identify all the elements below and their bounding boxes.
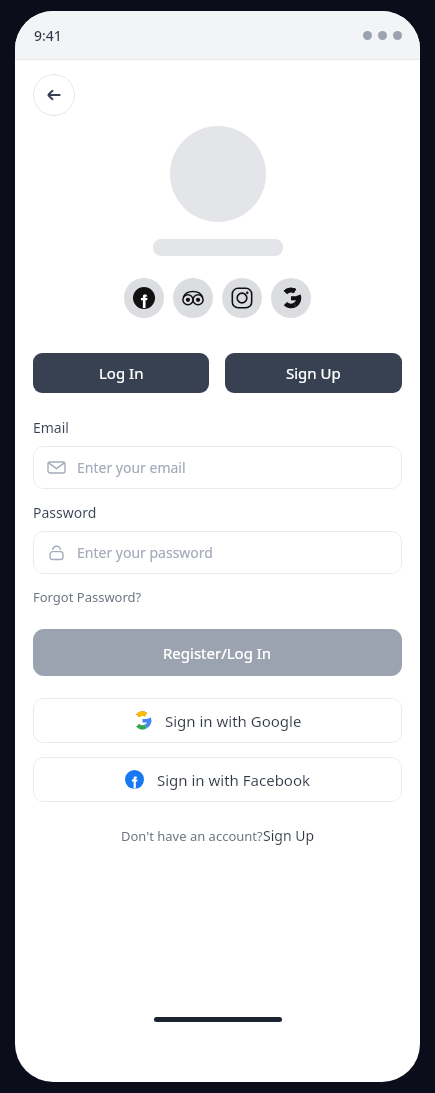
staticText: Sign Up [286,363,341,383]
button[interactable]: Sign in with Facebook [33,757,402,802]
button[interactable]: Back [33,74,75,116]
staticText: Register/Log In [163,643,272,663]
button[interactable]: Forgot Password? [33,586,142,608]
staticText: Don't have an account? [121,827,263,845]
button[interactable]: Enter your password [33,531,402,574]
button[interactable]: Enter your email [33,446,402,489]
button[interactable]: Instagram [222,278,262,318]
staticText: Enter your password [77,543,213,562]
staticText: Sign in with Google [165,711,302,731]
staticText: Password [33,503,97,522]
button[interactable]: Sign in with Google [33,698,402,743]
button[interactable]: Facebook [124,278,164,318]
staticText: Email [33,418,69,437]
button[interactable]: Sign Up [225,353,402,393]
staticText: Log In [99,363,144,383]
staticText: Sign in with Facebook [157,770,311,790]
staticText: Enter your email [77,458,186,477]
button[interactable]: Register/Log In [33,629,402,676]
button[interactable]: TripAdvisor [173,278,213,318]
button[interactable]: Google [271,278,311,318]
staticText: 9:41 [34,26,62,45]
button[interactable]: Sign Up [263,826,315,845]
button[interactable]: Log In [33,353,209,393]
